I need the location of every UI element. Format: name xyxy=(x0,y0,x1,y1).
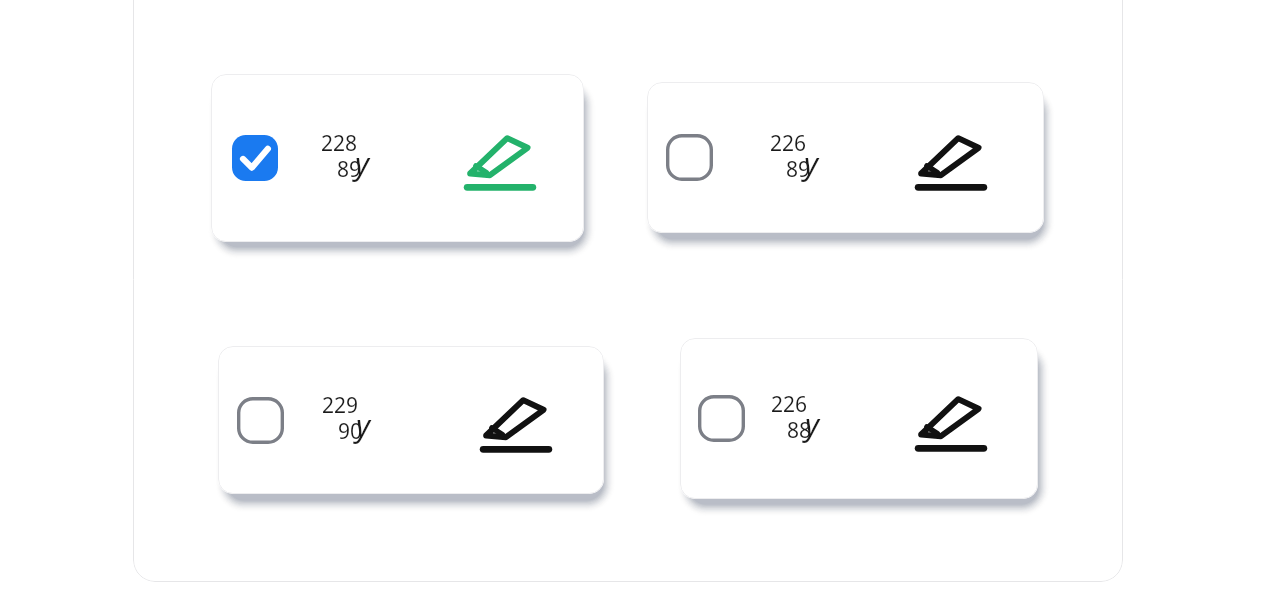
button[interactable]: Edit xyxy=(464,125,536,191)
staticText: 226 xyxy=(770,390,807,419)
staticText: 88 xyxy=(786,416,811,445)
button[interactable]: Unchecked xyxy=(237,397,284,444)
button[interactable]: Unchecked xyxy=(698,395,745,442)
staticText: y xyxy=(805,404,820,445)
staticText: 228 xyxy=(320,129,357,158)
button[interactable]: Unchecked xyxy=(218,346,604,494)
staticText: 90 xyxy=(337,417,362,446)
button[interactable]: Unchecked xyxy=(680,338,1038,499)
button[interactable]: Edit xyxy=(915,386,987,452)
staticText: 89 xyxy=(785,155,810,184)
staticText: y xyxy=(804,143,819,184)
button[interactable]: Checked xyxy=(211,74,584,242)
button[interactable]: Checked xyxy=(232,135,278,181)
button[interactable]: Edit xyxy=(915,125,987,191)
button[interactable]: Unchecked xyxy=(647,82,1044,233)
staticText: 229 xyxy=(321,391,358,420)
button[interactable]: Edit xyxy=(480,387,552,453)
staticText: y xyxy=(355,143,370,184)
staticText: y xyxy=(356,405,371,446)
button[interactable]: Unchecked xyxy=(666,134,713,181)
staticText: 89 xyxy=(336,155,361,184)
staticText: 226 xyxy=(769,129,806,158)
